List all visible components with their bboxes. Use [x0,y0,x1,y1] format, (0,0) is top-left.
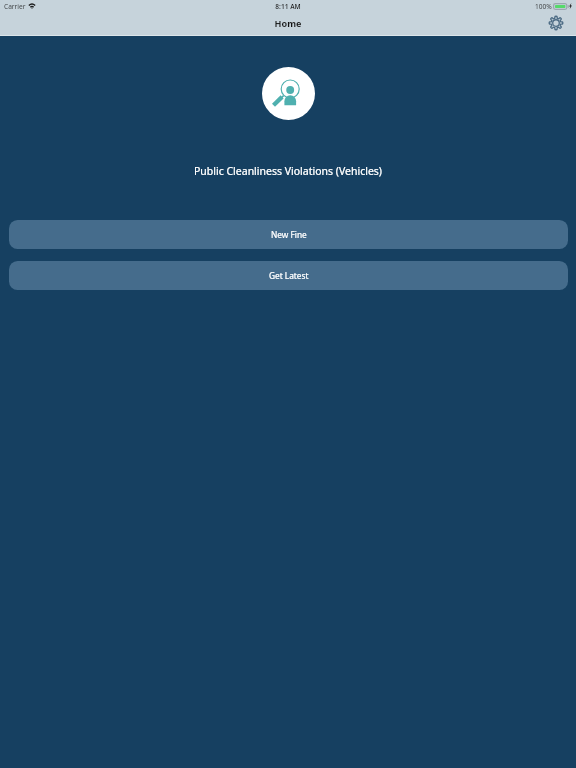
staticText: Public Cleanliness Violations (Vehicles) [0,164,576,178]
staticText: Get Latest [269,270,309,281]
staticText: New Fine [271,229,307,240]
button[interactable]: New Fine [9,220,568,249]
staticText: 8:11 AM [0,2,576,11]
button[interactable]: Get Latest [9,261,568,290]
staticText: 100% [535,2,552,11]
button[interactable]: Settings [546,13,566,33]
staticText: Carrier [4,2,26,11]
staticText: Home [0,17,576,29]
